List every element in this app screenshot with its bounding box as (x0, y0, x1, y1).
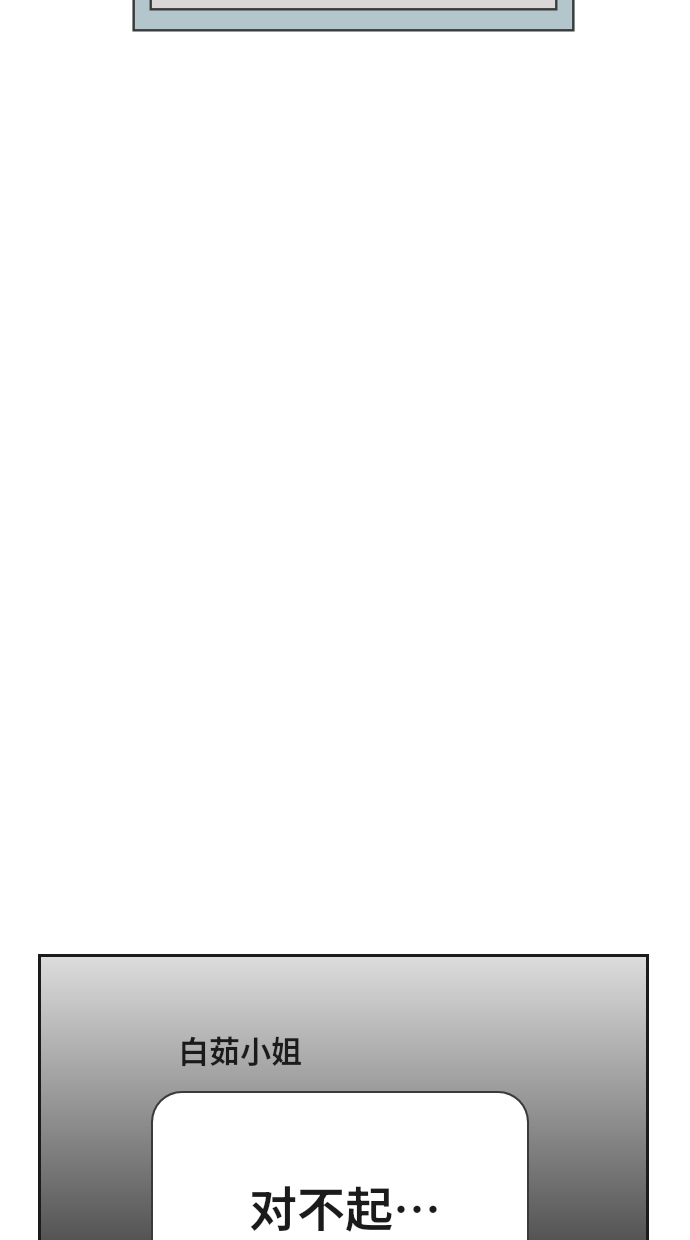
button[interactable]: Comic panel (38, 954, 649, 1240)
staticText: 对不起… (249, 1171, 442, 1240)
button[interactable]: Speech balloon (151, 1091, 529, 1240)
staticText: 白茹小姐 (178, 1027, 302, 1072)
